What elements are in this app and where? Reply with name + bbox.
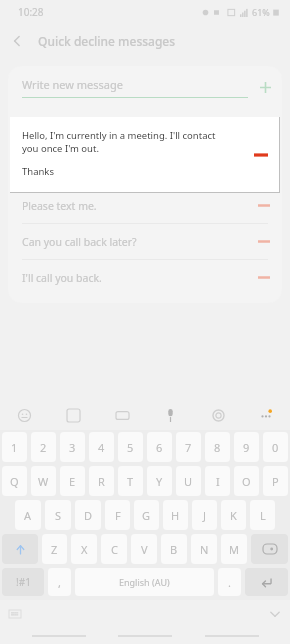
button[interactable]: More: [242, 400, 290, 430]
button[interactable]: 9: [234, 432, 259, 462]
button[interactable]: Back: [0, 24, 34, 58]
button[interactable]: 4: [89, 432, 114, 462]
staticText: .: [228, 575, 231, 590]
staticText: 6: [156, 440, 163, 455]
button[interactable]: GIF: [98, 400, 146, 430]
button[interactable]: C: [101, 534, 127, 564]
button[interactable]: X: [71, 534, 97, 564]
button[interactable]: Voice input: [146, 400, 194, 430]
button[interactable]: 8: [205, 432, 230, 462]
button[interactable]: !#1: [2, 568, 44, 596]
staticText: J: [203, 508, 207, 523]
button[interactable]: Navigation: [117, 629, 173, 643]
button[interactable]: Q: [2, 466, 27, 496]
button[interactable]: Write new message: [8, 66, 282, 108]
staticText: H: [171, 508, 180, 523]
staticText: 10:28: [18, 5, 44, 19]
staticText: Can you call back later?: [22, 235, 246, 249]
button[interactable]: Z: [42, 534, 67, 564]
button[interactable]: B: [161, 534, 187, 564]
staticText: X: [81, 542, 88, 557]
button[interactable]: 6: [147, 432, 172, 462]
button[interactable]: J: [192, 500, 217, 530]
button[interactable]: W: [31, 466, 56, 496]
staticText: Thanks: [22, 165, 54, 178]
staticText: C: [111, 542, 118, 557]
staticText: 4: [98, 440, 105, 455]
staticText: 61%: [252, 6, 270, 18]
button[interactable]: Navigation: [204, 629, 260, 643]
button[interactable]: Keyboard: [0, 600, 30, 628]
button[interactable]: L: [250, 500, 275, 530]
staticText: M: [229, 542, 239, 557]
button[interactable]: V: [131, 534, 157, 564]
staticText: English (AU): [119, 576, 170, 588]
button[interactable]: O: [234, 466, 259, 496]
staticText: 9: [243, 440, 250, 455]
button[interactable]: 0: [263, 432, 288, 462]
button[interactable]: R: [89, 466, 114, 496]
button[interactable]: I: [205, 466, 230, 496]
staticText: 7: [185, 440, 192, 455]
button[interactable]: Shift: [2, 534, 38, 564]
button[interactable]: Backspace: [251, 534, 288, 564]
staticText: P: [272, 474, 279, 489]
button[interactable]: H: [163, 500, 188, 530]
button[interactable]: Settings: [194, 400, 242, 430]
button[interactable]: Can you call back later?: [8, 224, 282, 259]
staticText: K: [230, 508, 237, 523]
button[interactable]: Hide keyboard: [260, 600, 290, 628]
staticText: U: [184, 474, 193, 489]
staticText: G: [142, 508, 151, 523]
staticText: R: [98, 474, 105, 489]
staticText: 2: [40, 440, 47, 455]
button[interactable]: 1: [2, 432, 27, 462]
button[interactable]: Please text me.: [8, 188, 282, 223]
staticText: Y: [156, 474, 163, 489]
button[interactable]: 2: [31, 432, 56, 462]
button[interactable]: Enter: [245, 568, 288, 596]
button[interactable]: English (AU): [75, 568, 214, 596]
button[interactable]: 3: [60, 432, 85, 462]
button[interactable]: F: [105, 500, 130, 530]
other: Remove: [246, 260, 282, 295]
staticText: N: [200, 542, 209, 557]
button[interactable]: T: [118, 466, 143, 496]
button[interactable]: Hello, I'm currently in a meeting. I'll …: [10, 117, 279, 192]
button[interactable]: D: [75, 500, 101, 530]
button[interactable]: S: [45, 500, 71, 530]
button[interactable]: P: [263, 466, 288, 496]
button[interactable]: M: [221, 534, 247, 564]
staticText: Quick decline messages: [38, 33, 176, 49]
staticText: 0: [272, 440, 279, 455]
button[interactable]: N: [191, 534, 217, 564]
button[interactable]: I'll call you back.: [8, 260, 282, 295]
button[interactable]: Emoji: [0, 400, 49, 430]
staticText: 8: [214, 440, 221, 455]
button[interactable]: 7: [176, 432, 201, 462]
button[interactable]: U: [176, 466, 201, 496]
staticText: F: [115, 508, 121, 523]
staticText: Q: [10, 474, 19, 489]
staticText: ,: [58, 575, 61, 590]
staticText: 3: [69, 440, 76, 455]
staticText: A: [24, 508, 32, 523]
staticText: D: [84, 508, 93, 523]
other: Remove: [246, 188, 282, 223]
button[interactable]: K: [221, 500, 246, 530]
staticText: 1: [11, 440, 18, 455]
staticText: V: [141, 542, 148, 557]
button[interactable]: 5: [118, 432, 143, 462]
button[interactable]: Navigation: [31, 629, 87, 643]
staticText: Hello, I'm currently in a meeting. I'll …: [22, 129, 216, 155]
button[interactable]: G: [134, 500, 159, 530]
staticText: S: [55, 508, 62, 523]
button[interactable]: Y: [147, 466, 172, 496]
button[interactable]: ,: [48, 568, 71, 596]
button[interactable]: E: [60, 466, 85, 496]
button[interactable]: A: [15, 500, 41, 530]
staticText: Please text me.: [22, 199, 246, 213]
staticText: O: [242, 474, 251, 489]
button[interactable]: Stickers: [49, 400, 98, 430]
